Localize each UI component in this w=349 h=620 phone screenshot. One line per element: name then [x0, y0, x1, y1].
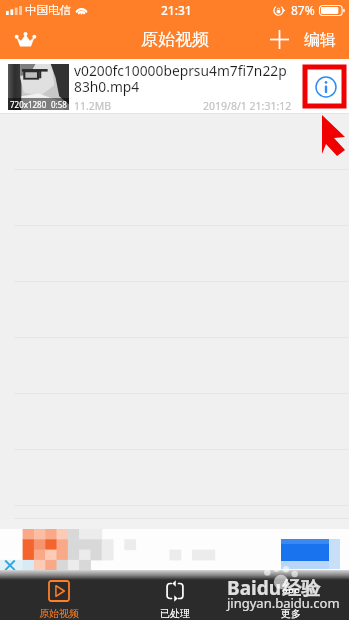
staticText: 0:58 [51, 99, 67, 110]
button[interactable]: 已处理 [117, 580, 233, 620]
button[interactable]: 编辑 [304, 20, 336, 59]
staticText: 21:31 [161, 2, 192, 18]
button[interactable]: 原始视频 [0, 580, 117, 620]
staticText: 87% [291, 2, 315, 18]
staticText: 经验 [282, 577, 320, 601]
staticText: 11.2MB [74, 99, 112, 113]
staticText: v0200fc10000beprsu4m7fi7n22p 83h0.mp4 [74, 61, 287, 96]
button[interactable]: VIP [0, 20, 50, 59]
staticText: 原始视频 [141, 29, 209, 50]
staticText: 原始视频 [39, 607, 79, 620]
staticText: jingyan.baidu.com [227, 594, 340, 612]
staticText: 中国电信 [25, 3, 71, 17]
staticText: Baidu [227, 575, 282, 601]
button[interactable]: 720x1280 [0, 59, 349, 114]
staticText: 已处理 [160, 607, 190, 620]
button[interactable]: Add [264, 20, 294, 59]
staticText: 2019/8/1 21:31:12 [203, 99, 292, 113]
staticText: 720x1280 [10, 99, 47, 110]
button[interactable]: Info [303, 59, 349, 114]
staticText: 更多 [281, 607, 301, 620]
button[interactable]: 更多 [233, 580, 349, 620]
staticText: 编辑 [304, 30, 336, 50]
